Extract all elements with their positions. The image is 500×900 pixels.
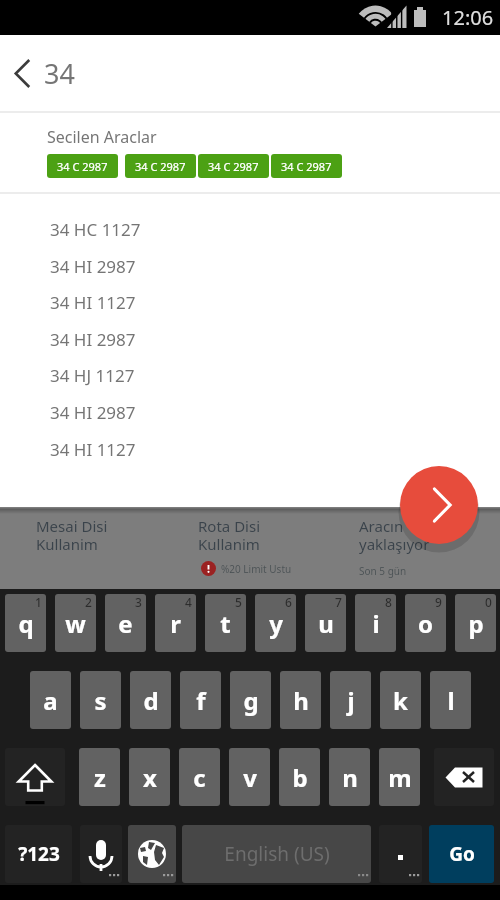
- button[interactable]: Aracın yaklaşıyor: [338, 507, 497, 589]
- staticText: d: [143, 684, 159, 717]
- staticText: c: [193, 761, 206, 794]
- button[interactable]: Next: [400, 466, 478, 544]
- button[interactable]: y: [255, 594, 296, 652]
- staticText: n: [342, 761, 358, 794]
- button[interactable]: o: [405, 594, 446, 652]
- button[interactable]: 34 HJ 1127: [0, 357, 500, 394]
- staticText: 34 HI 1127: [50, 291, 136, 314]
- staticText: 12:06: [442, 4, 494, 31]
- button[interactable]: f: [180, 671, 221, 729]
- staticText: 34 HJ 1127: [50, 364, 135, 387]
- staticText: 34 C 2987: [135, 159, 186, 174]
- button[interactable]: 34 C 2987: [198, 154, 269, 178]
- button[interactable]: w: [55, 594, 96, 652]
- button[interactable]: t: [205, 594, 246, 652]
- button[interactable]: l: [430, 671, 471, 729]
- button[interactable]: 34 HI 2987: [0, 394, 500, 431]
- staticText: 5: [235, 594, 242, 610]
- staticText: 1: [35, 594, 42, 610]
- button[interactable]: a: [30, 671, 71, 729]
- staticText: o: [418, 607, 433, 640]
- staticText: x: [143, 761, 157, 794]
- staticText: w: [65, 607, 86, 640]
- button[interactable]: n: [329, 748, 370, 806]
- staticText: Rota Disi Kullanim: [198, 516, 261, 555]
- staticText: English (US): [224, 841, 330, 867]
- staticText: Go: [449, 841, 475, 867]
- button[interactable]: 34 C 2987: [125, 154, 196, 178]
- staticText: Son 5 gün: [359, 564, 407, 578]
- button[interactable]: Change language: [128, 825, 176, 883]
- staticText: r: [170, 607, 181, 640]
- button[interactable]: x: [129, 748, 170, 806]
- staticText: f: [196, 684, 206, 717]
- staticText: 2: [85, 594, 92, 610]
- button[interactable]: q: [5, 594, 46, 652]
- staticText: y: [269, 607, 283, 640]
- button[interactable]: Shift: [5, 748, 65, 806]
- button[interactable]: g: [230, 671, 271, 729]
- button[interactable]: 34 C 2987: [271, 154, 342, 178]
- button[interactable]: ?123: [5, 825, 72, 883]
- button[interactable]: z: [79, 748, 120, 806]
- button[interactable]: k: [380, 671, 421, 729]
- staticText: 34 HC 1127: [50, 218, 141, 241]
- staticText: t: [220, 607, 231, 640]
- button[interactable]: b: [279, 748, 320, 806]
- staticText: 7: [335, 594, 342, 610]
- button[interactable]: c: [179, 748, 220, 806]
- staticText: u: [318, 607, 334, 640]
- button[interactable]: Voice input: [80, 825, 122, 883]
- button[interactable]: i: [355, 594, 396, 652]
- staticText: a: [43, 684, 58, 717]
- button[interactable]: e: [105, 594, 146, 652]
- button[interactable]: s: [80, 671, 121, 729]
- button[interactable]: r: [155, 594, 196, 652]
- button[interactable]: u: [305, 594, 346, 652]
- button[interactable]: Go: [429, 825, 494, 883]
- button[interactable]: Period: [379, 825, 422, 883]
- staticText: z: [94, 761, 106, 794]
- button[interactable]: Backspace: [434, 748, 494, 806]
- staticText: b: [292, 761, 308, 794]
- button[interactable]: 34: [44, 35, 500, 111]
- staticText: k: [393, 684, 408, 717]
- staticText: Secilen Araclar: [47, 126, 157, 148]
- staticText: 0: [485, 594, 492, 610]
- button[interactable]: 34 HC 1127: [0, 211, 500, 248]
- staticText: 34 HI 2987: [50, 328, 136, 351]
- button[interactable]: Rota Disi Kullanim: [170, 507, 329, 589]
- button[interactable]: p: [455, 594, 496, 652]
- button[interactable]: English (US): [182, 825, 371, 883]
- button[interactable]: v: [229, 748, 270, 806]
- staticText: 34 C 2987: [208, 159, 259, 174]
- button[interactable]: Mesai Disi Kullanim: [3, 507, 162, 589]
- staticText: p: [468, 607, 484, 640]
- staticText: e: [118, 607, 133, 640]
- staticText: m: [388, 761, 412, 794]
- button[interactable]: m: [379, 748, 420, 806]
- staticText: 34 HI 2987: [50, 401, 136, 424]
- staticText: h: [293, 684, 309, 717]
- button[interactable]: 34 HI 2987: [0, 248, 500, 285]
- staticText: 3: [135, 594, 142, 610]
- staticText: 34: [44, 55, 75, 92]
- button[interactable]: 34 C 2987: [47, 154, 118, 178]
- button[interactable]: j: [330, 671, 371, 729]
- staticText: 9: [435, 594, 442, 610]
- staticText: 6: [285, 594, 292, 610]
- button[interactable]: 34 HI 2987: [0, 321, 500, 358]
- staticText: l: [447, 684, 455, 717]
- staticText: q: [18, 607, 34, 640]
- staticText: 34 HI 2987: [50, 255, 136, 278]
- staticText: 34 HI 1127: [50, 438, 136, 461]
- button[interactable]: Back: [0, 35, 44, 111]
- staticText: 8: [385, 594, 392, 610]
- button[interactable]: h: [280, 671, 321, 729]
- staticText: 34 C 2987: [57, 159, 108, 174]
- button[interactable]: 34 HI 1127: [0, 284, 500, 321]
- staticText: 4: [185, 594, 192, 610]
- button[interactable]: d: [130, 671, 171, 729]
- staticText: g: [243, 684, 259, 717]
- button[interactable]: 34 HI 1127: [0, 431, 500, 468]
